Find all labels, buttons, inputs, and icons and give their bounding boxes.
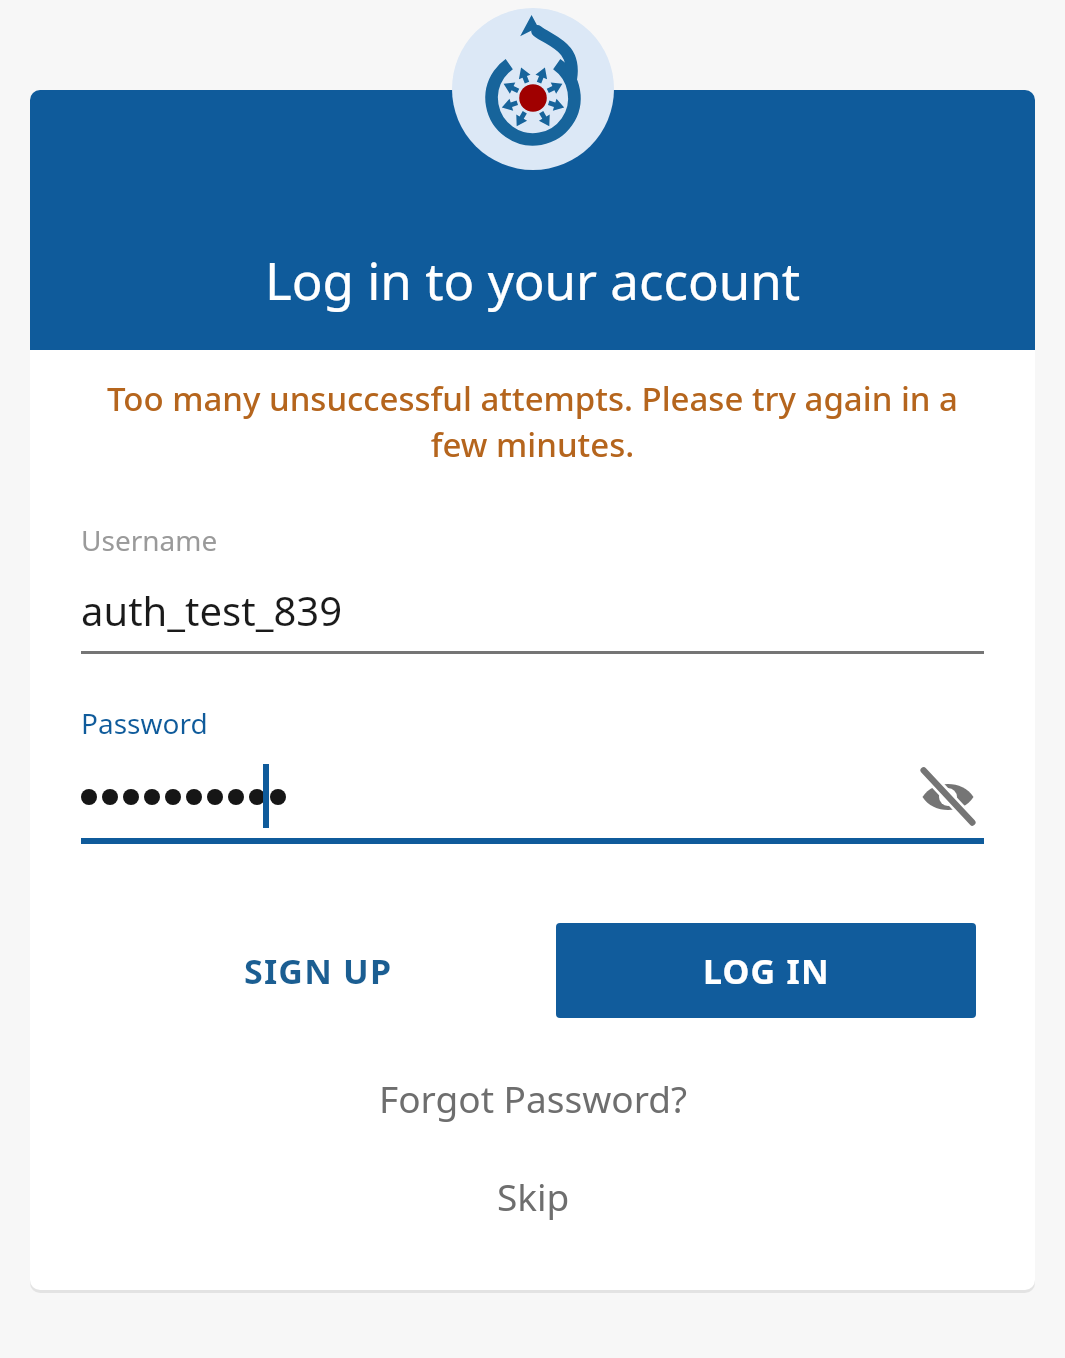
staticText: Password	[81, 704, 208, 742]
button[interactable]: SIGN UP	[185, 923, 451, 1018]
button[interactable]: LOG IN	[556, 923, 976, 1018]
staticText: Forgot Password?	[379, 1073, 688, 1123]
button[interactable]: Skip	[403, 1160, 663, 1232]
button[interactable]: Forgot Password?	[333, 1060, 733, 1136]
staticText: LOG IN	[703, 948, 830, 994]
staticText: SIGN UP	[244, 948, 393, 994]
staticText: auth_test_839	[81, 583, 343, 637]
button[interactable]: Show password	[912, 764, 984, 830]
staticText: Log in to your account	[265, 245, 801, 314]
staticText: Too many unsuccessful attempts. Please t…	[80, 376, 985, 467]
staticText: Username	[81, 521, 218, 559]
staticText: Skip	[497, 1171, 570, 1221]
